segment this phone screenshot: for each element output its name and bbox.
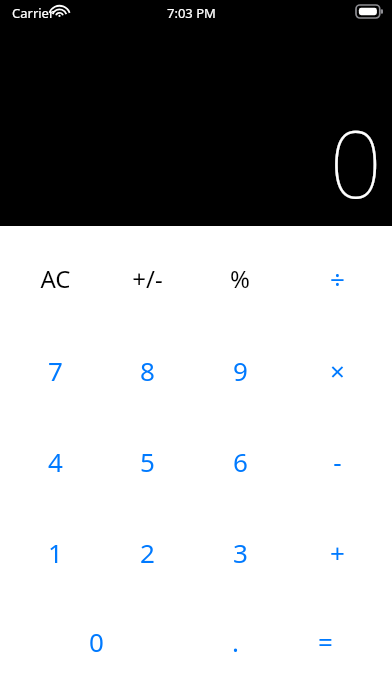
staticText: Carrier xyxy=(12,4,55,22)
staticText: 9 xyxy=(233,353,248,388)
button[interactable]: × xyxy=(291,325,383,416)
staticText: + xyxy=(330,535,345,570)
button[interactable]: 7 xyxy=(9,325,101,416)
staticText: = xyxy=(318,624,333,659)
staticText: 7 xyxy=(48,353,63,388)
staticText: 6 xyxy=(233,444,248,479)
button[interactable]: 6 xyxy=(194,416,286,507)
staticText: AC xyxy=(40,262,71,295)
staticText: % xyxy=(230,262,250,295)
button[interactable]: AC xyxy=(9,233,101,324)
staticText: 3 xyxy=(233,535,248,570)
button[interactable]: 8 xyxy=(101,325,193,416)
button[interactable]: = xyxy=(279,601,371,681)
button[interactable]: 4 xyxy=(9,416,101,507)
button[interactable]: 3 xyxy=(194,507,286,598)
staticText: ÷ xyxy=(330,261,345,296)
button[interactable]: - xyxy=(291,416,383,507)
button[interactable]: . xyxy=(189,601,281,681)
staticText: 1 xyxy=(48,535,63,570)
staticText: 5 xyxy=(140,444,155,479)
button[interactable]: 2 xyxy=(101,507,193,598)
staticText: 2 xyxy=(140,535,155,570)
button[interactable]: % xyxy=(194,233,286,324)
button[interactable]: ÷ xyxy=(291,233,383,324)
staticText: 7:03 PM xyxy=(167,4,216,22)
staticText: 0 xyxy=(329,100,382,206)
staticText: 4 xyxy=(48,444,63,479)
button[interactable]: 0 xyxy=(4,601,188,681)
button[interactable]: 9 xyxy=(194,325,286,416)
staticText: × xyxy=(330,353,345,388)
staticText: - xyxy=(333,444,342,479)
staticText: 8 xyxy=(140,353,155,388)
staticText: +/- xyxy=(132,262,163,295)
button[interactable]: 1 xyxy=(9,507,101,598)
button[interactable]: + xyxy=(291,507,383,598)
staticText: . xyxy=(232,624,239,659)
button[interactable]: 5 xyxy=(101,416,193,507)
button[interactable]: +/- xyxy=(101,233,193,324)
staticText: 0 xyxy=(89,624,104,659)
